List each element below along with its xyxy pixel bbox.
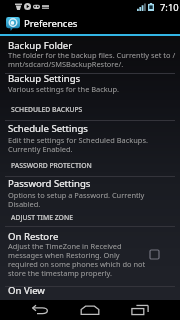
staticText: On View [8,284,45,297]
button[interactable]: Password Settings [0,177,180,212]
staticText: Preferences [24,17,78,30]
staticText: Backup Settings [8,72,81,85]
button[interactable]: Home [70,300,110,320]
staticText: Options to setup a Password. Currently D… [8,190,176,209]
staticText: PASSWORD PROTECTION [11,161,92,170]
staticText: ADJUST TIME ZONE [11,213,73,222]
button[interactable]: Backup Settings [0,74,180,104]
staticText: Adjust the TimeZone in Received messages… [8,241,148,278]
button[interactable]: Preferences [0,13,180,34]
staticText: Schedule Settings [8,122,88,135]
staticText: The folder for the backup files. Current… [8,50,176,69]
button[interactable]: Recents [120,300,160,320]
staticText: Various settings for the Backup. [8,84,119,94]
button[interactable]: Back [20,300,60,320]
staticText: 7:10 [160,1,179,14]
staticText: Backup Folder [8,39,73,52]
button[interactable]: Backup Folder [0,36,180,73]
staticText: On Restore [8,230,59,243]
staticText: Edit the settings for Scheduled Backups.… [8,135,176,154]
button[interactable]: On View [0,287,180,300]
button[interactable]: Schedule Settings [0,121,180,160]
staticText: SCHEDULED BACKUPS [11,105,83,114]
staticText: Password Settings [8,177,91,190]
button[interactable]: On Restore [0,227,180,286]
